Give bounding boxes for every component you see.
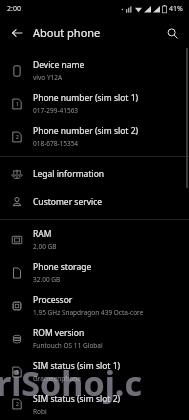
staticText: About phone bbox=[33, 25, 101, 40]
staticText: Phone storage bbox=[33, 261, 92, 273]
button[interactable]: Legal information bbox=[0, 160, 189, 188]
button[interactable]: Customer service bbox=[0, 188, 189, 216]
staticText: SIM status (sim slot 1) bbox=[33, 360, 121, 372]
staticText: 1 bbox=[16, 369, 19, 376]
staticText: Customer service bbox=[33, 196, 103, 208]
staticText: 41% bbox=[169, 4, 183, 14]
staticText: 1 bbox=[16, 101, 19, 108]
staticText: SIM status (sim slot 2) bbox=[33, 393, 121, 405]
button[interactable]: Device name bbox=[0, 54, 189, 87]
staticText: vivo Y12A bbox=[33, 73, 63, 82]
button[interactable]: 1 bbox=[0, 355, 189, 388]
button[interactable]: Search bbox=[162, 23, 182, 43]
button[interactable]: Phone storage bbox=[0, 256, 189, 289]
staticText: Robi bbox=[33, 407, 47, 416]
staticText: 2 bbox=[16, 401, 19, 408]
staticText: Device name bbox=[33, 59, 85, 71]
staticText: 32.00 GB bbox=[33, 275, 61, 284]
staticText: 2:00 bbox=[7, 4, 21, 14]
button[interactable]: Processor bbox=[0, 289, 189, 322]
staticText: riSohoj.c bbox=[0, 360, 142, 406]
staticText: Legal information bbox=[33, 168, 105, 180]
button[interactable]: ROM version bbox=[0, 322, 189, 355]
staticText: ROM version bbox=[33, 327, 85, 339]
staticText: Processor bbox=[33, 294, 73, 306]
staticText: Phone number (sim slot 2) bbox=[33, 125, 139, 137]
staticText: 2.00 GB bbox=[33, 242, 57, 251]
button[interactable]: 2 bbox=[0, 120, 189, 153]
staticText: Phone number (sim slot 1) bbox=[33, 92, 139, 104]
button[interactable]: Back bbox=[7, 23, 27, 43]
button[interactable]: 1 bbox=[0, 87, 189, 120]
staticText: 1.95 GHz Snapdragon 439 Octa-core bbox=[33, 308, 144, 317]
button[interactable]: RAM bbox=[0, 223, 189, 256]
staticText: RAM bbox=[33, 228, 52, 240]
button[interactable]: 2 bbox=[0, 388, 189, 420]
staticText: 018-678-15354 bbox=[33, 139, 79, 148]
staticText: Funtouch OS 11 Global bbox=[33, 341, 103, 350]
staticText: Grameenphone bbox=[33, 374, 81, 383]
staticText: 017-299-41563 bbox=[33, 106, 79, 115]
staticText: 2 bbox=[16, 134, 19, 141]
